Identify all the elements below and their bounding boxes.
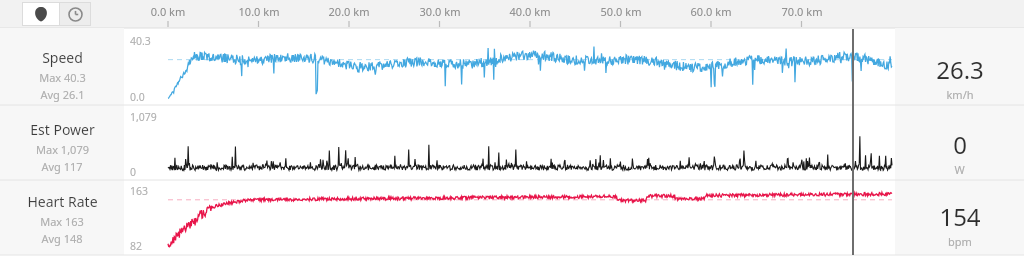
button[interactable]: Show by distance xyxy=(23,3,59,25)
staticText: Heart Rate xyxy=(27,192,98,211)
staticText: Max 163 xyxy=(40,214,84,229)
staticText: 0.0 km xyxy=(140,4,196,19)
staticText: 82 xyxy=(130,239,143,253)
staticText: 0 xyxy=(130,165,137,179)
staticText: Avg 26.1 xyxy=(40,87,85,102)
staticText: 20.0 km xyxy=(321,4,377,19)
staticText: bpm xyxy=(948,234,972,249)
staticText: 163 xyxy=(130,184,149,198)
staticText: 0 xyxy=(953,128,967,161)
staticText: 60.0 km xyxy=(683,4,739,19)
staticText: 30.0 km xyxy=(412,4,468,19)
staticText: 10.0 km xyxy=(231,4,287,19)
staticText: Avg 148 xyxy=(41,231,83,246)
staticText: 154 xyxy=(939,200,981,233)
staticText: 1,079 xyxy=(130,110,157,124)
staticText: 70.0 km xyxy=(774,4,830,19)
staticText: 26.3 xyxy=(936,53,984,86)
staticText: W xyxy=(954,162,965,177)
button[interactable]: Est Power xyxy=(0,120,124,174)
staticText: Max 40.3 xyxy=(39,70,86,85)
button[interactable]: 26.3 xyxy=(895,53,1024,102)
staticText: km/h xyxy=(946,87,974,102)
staticText: 40.0 km xyxy=(502,4,558,19)
staticText: Avg 117 xyxy=(41,159,83,174)
staticText: Est Power xyxy=(30,120,95,139)
staticText: Speed xyxy=(42,48,83,67)
staticText: Max 1,079 xyxy=(36,142,89,157)
button[interactable]: 0 xyxy=(895,128,1024,177)
staticText: 50.0 km xyxy=(593,4,649,19)
button[interactable]: Heart Rate xyxy=(0,192,124,246)
staticText: 0.0 xyxy=(130,90,145,104)
button[interactable]: 154 xyxy=(895,200,1024,249)
button[interactable]: Speed xyxy=(0,48,124,102)
staticText: 40.3 xyxy=(130,34,151,48)
button[interactable]: Show by time xyxy=(60,3,90,25)
